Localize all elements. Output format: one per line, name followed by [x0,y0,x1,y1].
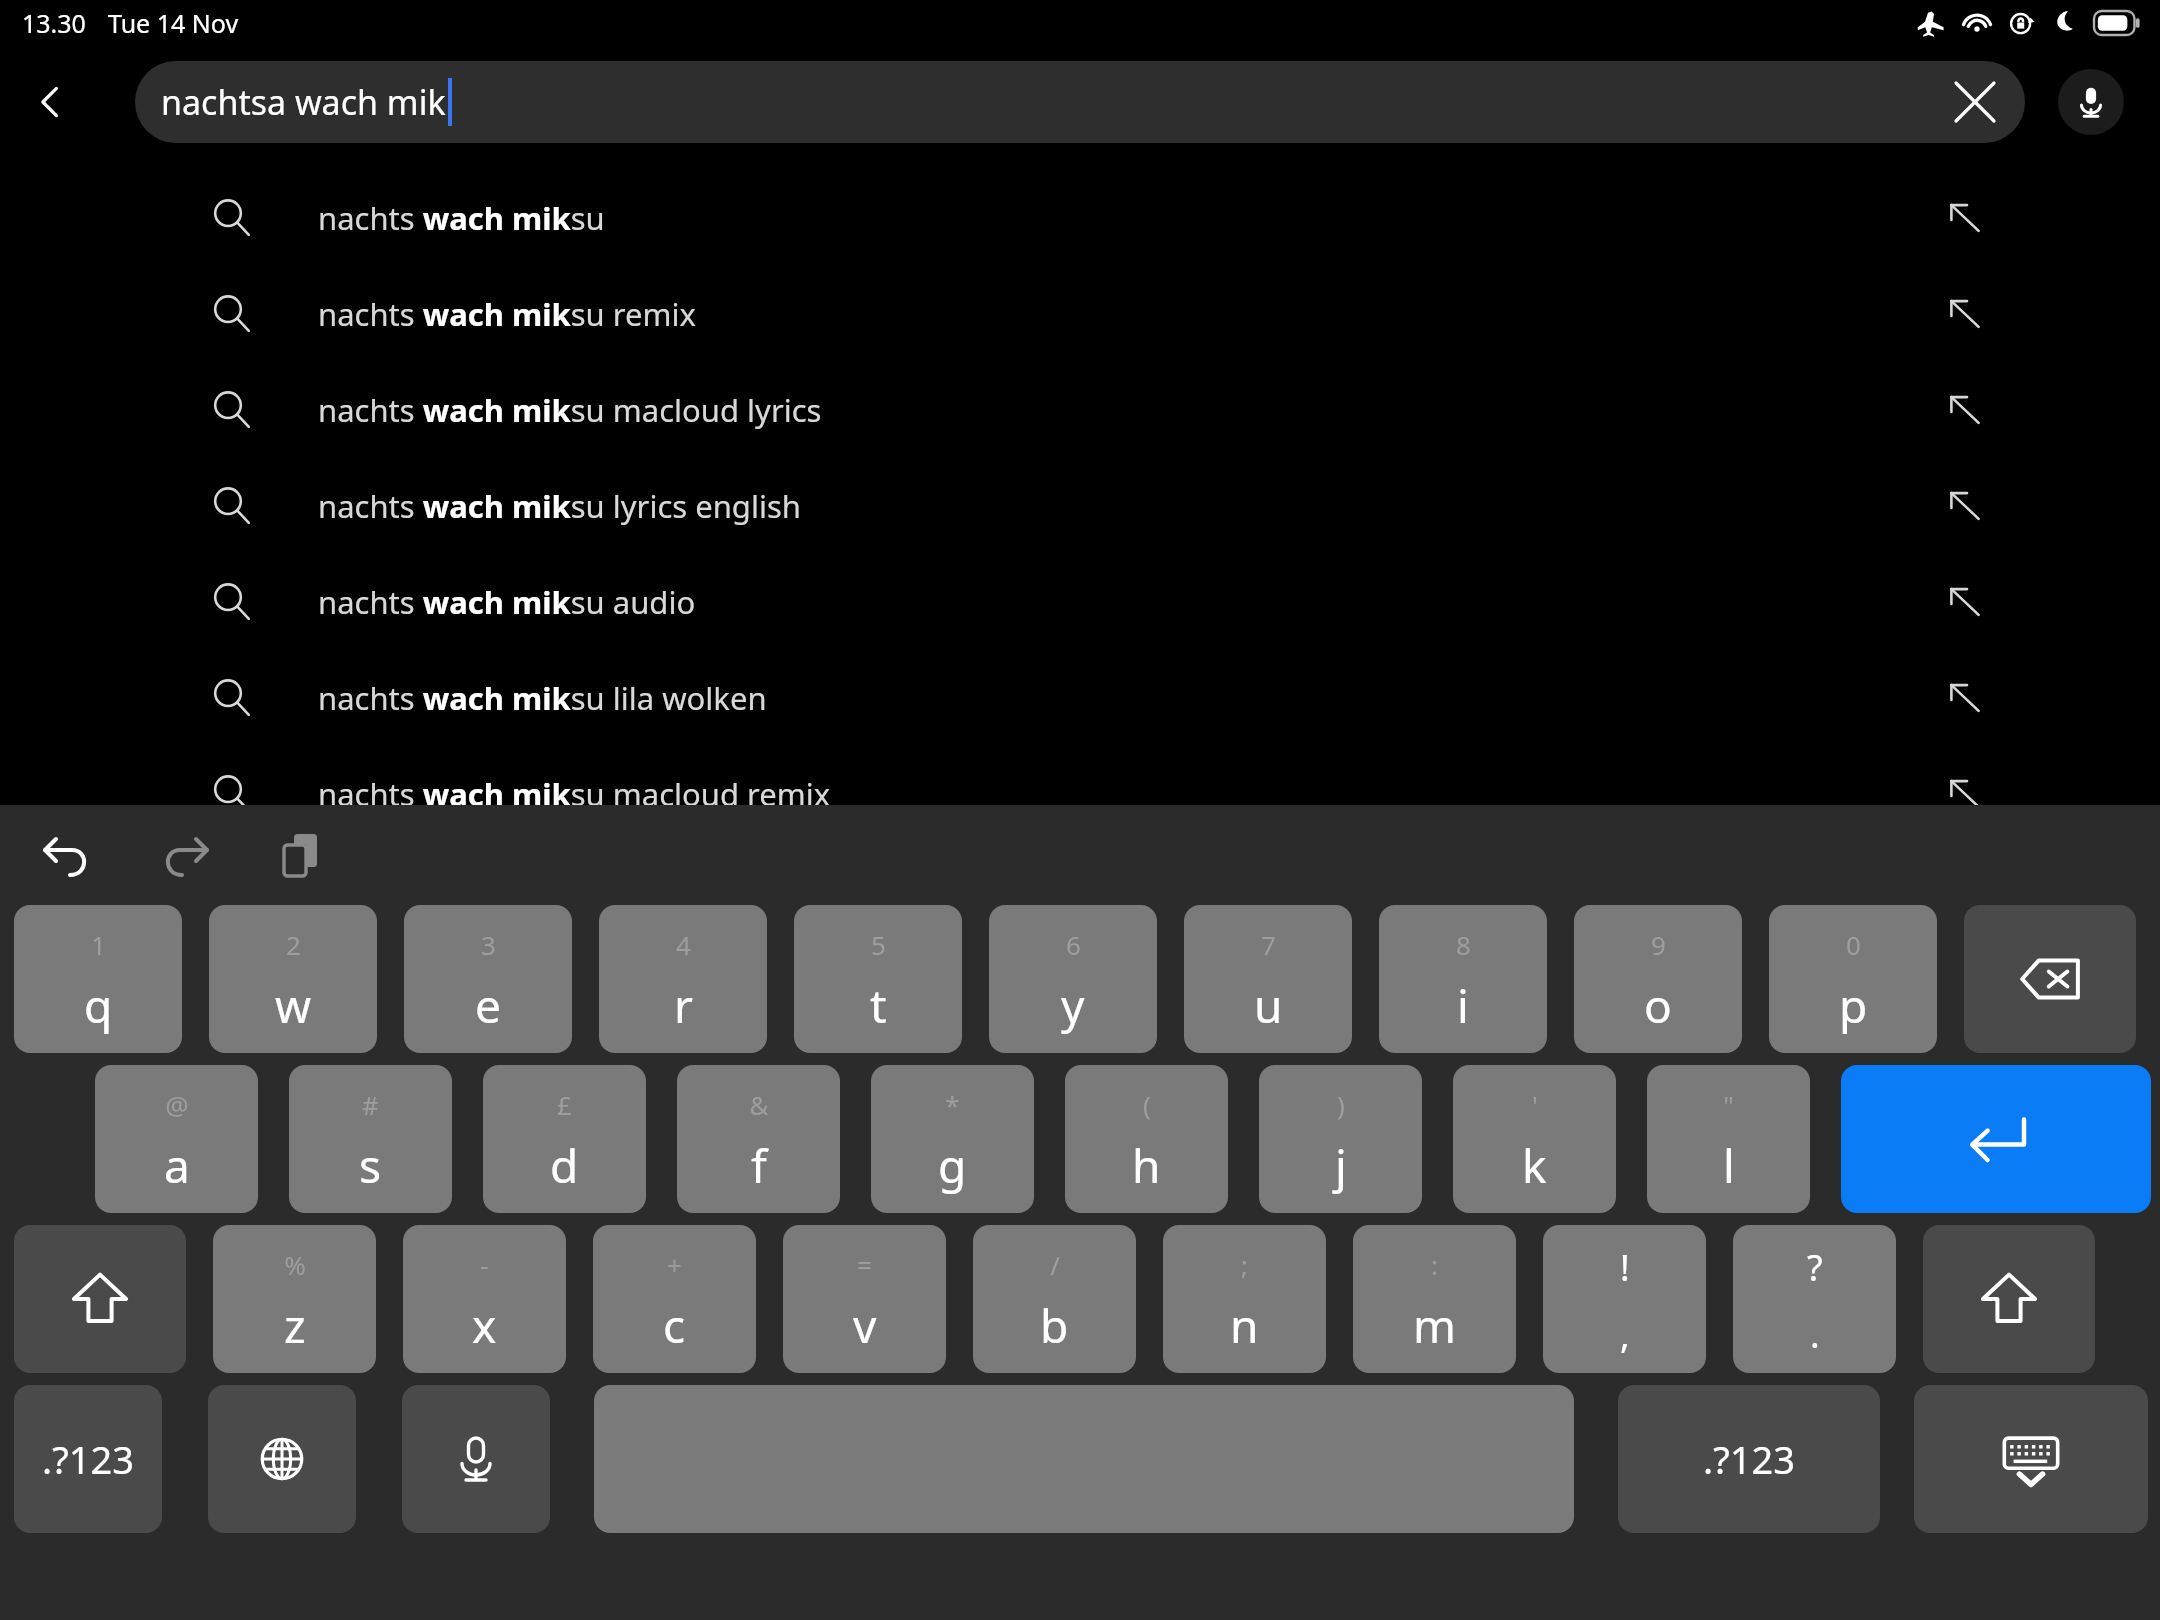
staticText: / [1050,1247,1060,1282]
button[interactable]: nachts wach miksu macloud remix [0,746,2160,842]
button[interactable]: Insert suggestion [1930,375,2000,445]
button[interactable]: " [1647,1065,1810,1213]
staticText: Tue 14 Nov [108,6,239,40]
button[interactable]: ? [1733,1225,1896,1373]
staticText: i [1457,974,1469,1037]
staticText: d [550,1134,579,1197]
button[interactable]: nachts wach miksu lila wolken [0,650,2160,746]
button[interactable]: Back [18,69,84,135]
button[interactable]: .?123 [14,1385,162,1533]
button[interactable]: & [677,1065,840,1213]
button[interactable]: Voice input [402,1385,550,1533]
staticText: a [164,1134,190,1197]
staticText: 2 [286,927,301,962]
staticText: = [857,1247,872,1282]
staticText: * [945,1087,960,1122]
button[interactable]: - [403,1225,566,1373]
staticText: nachts wach miksu [318,197,605,239]
staticText: p [1839,974,1868,1037]
button[interactable]: * [871,1065,1034,1213]
button[interactable]: Shift [14,1225,186,1373]
staticText: 9 [1651,927,1666,962]
button[interactable]: 6 [989,905,1157,1053]
staticText: nachts wach miksu macloud lyrics [318,389,822,431]
staticText: 3 [481,927,496,962]
button[interactable]: Enter [1841,1065,2151,1213]
staticText: c [663,1294,686,1357]
staticText: y [1061,974,1085,1037]
button[interactable]: / [973,1225,1136,1373]
button[interactable]: Backspace [1964,905,2136,1053]
staticText: ( [1143,1087,1151,1122]
staticText: 5 [871,927,886,962]
button[interactable]: nachts wach miksu [0,170,2160,266]
button[interactable]: Insert suggestion [1930,567,2000,637]
button[interactable]: : [1353,1225,1516,1373]
button[interactable]: Shift [1923,1225,2095,1373]
button[interactable]: + [593,1225,756,1373]
button[interactable]: = [783,1225,946,1373]
button[interactable]: # [289,1065,452,1213]
button[interactable]: 4 [599,905,767,1053]
staticText: 13.30 [22,6,86,40]
button[interactable]: Voice search [2058,69,2124,135]
staticText: 8 [1456,927,1471,962]
button[interactable]: Clipboard [266,819,338,891]
button[interactable]: ' [1453,1065,1616,1213]
button[interactable]: ! [1543,1225,1706,1373]
button[interactable]: 9 [1574,905,1742,1053]
button[interactable]: Change language [208,1385,356,1533]
button[interactable]: 0 [1769,905,1937,1053]
staticText: ' [1532,1087,1538,1122]
button[interactable]: ) [1259,1065,1422,1213]
staticText: m [1413,1294,1457,1357]
staticText: e [475,974,501,1037]
button[interactable]: % [213,1225,376,1373]
button[interactable]: £ [483,1065,646,1213]
button[interactable]: 1 [14,905,182,1053]
button[interactable]: Redo [150,819,222,891]
staticText: : [1431,1247,1438,1282]
staticText: t [870,974,887,1037]
staticText: .?123 [42,1433,134,1485]
button[interactable]: Insert suggestion [1930,663,2000,733]
staticText: v [853,1294,877,1357]
button[interactable]: 7 [1184,905,1352,1053]
button[interactable]: nachts wach miksu macloud lyrics [0,362,2160,458]
staticText: @ [165,1087,189,1122]
button[interactable]: ( [1065,1065,1228,1213]
button[interactable]: @ [95,1065,258,1213]
button[interactable]: 5 [794,905,962,1053]
staticText: z [284,1294,306,1357]
staticText: . [1810,1310,1820,1359]
staticText: - [480,1247,489,1282]
staticText: nachtsa wach mik [161,79,446,125]
button[interactable]: nachts wach miksu lyrics english [0,458,2160,554]
button[interactable]: Space [594,1385,1574,1533]
button[interactable]: Clear [1935,62,2015,142]
button[interactable]: Insert suggestion [1930,471,2000,541]
button[interactable]: nachts wach miksu audio [0,554,2160,650]
button[interactable]: nachtsa wach mik [135,61,2025,143]
staticText: f [751,1134,767,1197]
staticText: s [359,1134,382,1197]
staticText: o [1644,974,1672,1037]
button[interactable]: Insert suggestion [1930,183,2000,253]
button[interactable]: 2 [209,905,377,1053]
button[interactable]: Insert suggestion [1930,279,2000,349]
staticText: j [1335,1134,1347,1197]
button[interactable]: .?123 [1618,1385,1880,1533]
button[interactable]: Insert suggestion [1930,759,2000,829]
button[interactable]: Hide keyboard [1914,1385,2148,1533]
staticText: nachts wach miksu remix [318,293,696,335]
staticText: & [749,1087,769,1122]
button[interactable]: ; [1163,1225,1326,1373]
staticText: # [362,1087,379,1122]
button[interactable]: Undo [30,819,102,891]
button[interactable]: 3 [404,905,572,1053]
button[interactable]: nachts wach miksu remix [0,266,2160,362]
staticText: ; [1241,1247,1248,1282]
staticText: 0 [1846,927,1861,962]
button[interactable]: 8 [1379,905,1547,1053]
staticText: q [84,974,113,1037]
